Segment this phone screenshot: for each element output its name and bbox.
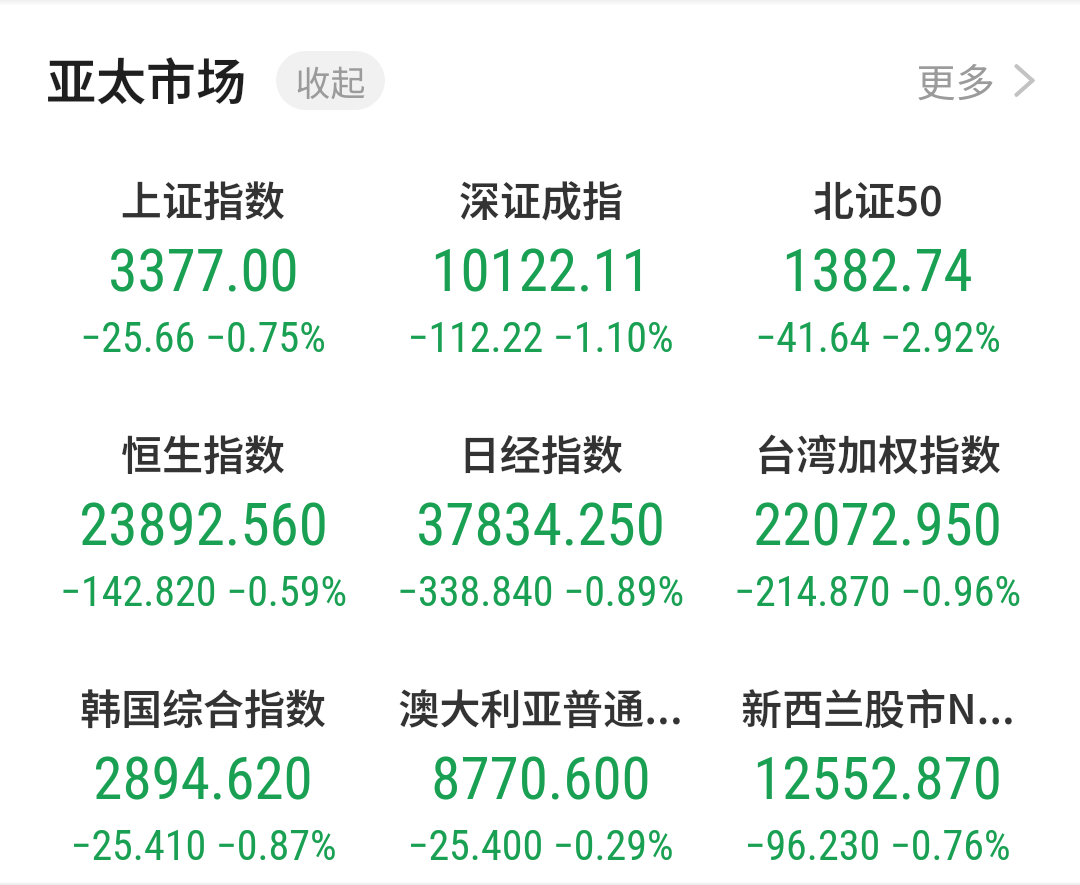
staticText: 收起 (295, 55, 366, 106)
staticText: −338.840 −0.89% (397, 567, 684, 616)
button[interactable]: 澳大利亚普通... (372, 676, 709, 870)
staticText: 澳大利亚普通... (398, 676, 683, 735)
staticText: −112.22 −1.10% (407, 313, 674, 362)
button[interactable]: 收起 (276, 51, 385, 110)
button[interactable]: 更多 (916, 40, 1034, 116)
button[interactable]: 深证成指 (372, 168, 709, 362)
staticText: −214.870 −0.96% (734, 567, 1021, 616)
staticText: 1382.74 (782, 236, 973, 305)
staticText: −25.66 −0.75% (80, 313, 326, 362)
staticText: 日经指数 (459, 422, 623, 481)
staticText: 3377.00 (108, 236, 299, 305)
button[interactable]: 上证指数 (34, 168, 372, 362)
staticText: 亚太市场 (46, 42, 246, 114)
staticText: 37834.250 (416, 490, 665, 559)
button[interactable]: 台湾加权指数 (709, 422, 1046, 616)
staticText: 韩国综合指数 (80, 676, 326, 735)
staticText: 台湾加权指数 (755, 422, 1001, 481)
staticText: 10122.11 (431, 236, 651, 305)
staticText: −25.410 −0.87% (70, 821, 337, 870)
button[interactable]: 新西兰股市N... (709, 676, 1046, 870)
staticText: 上证指数 (121, 168, 285, 227)
staticText: 12552.870 (753, 744, 1002, 813)
button[interactable]: 恒生指数 (34, 422, 372, 616)
staticText: 深证成指 (459, 168, 623, 227)
staticText: −142.820 −0.59% (60, 567, 347, 616)
staticText: 2894.620 (93, 744, 313, 813)
staticText: −96.230 −0.76% (744, 821, 1011, 870)
staticText: 新西兰股市N... (741, 676, 1015, 735)
staticText: 更多 (916, 52, 995, 108)
staticText: 北证50 (813, 168, 943, 227)
staticText: −41.64 −2.92% (755, 313, 1001, 362)
other: More Asia-Pacific markets (1015, 65, 1034, 96)
staticText: −25.400 −0.29% (407, 821, 674, 870)
staticText: 23892.560 (79, 490, 328, 559)
button[interactable]: 韩国综合指数 (34, 676, 372, 870)
button[interactable]: 北证50 (709, 168, 1046, 362)
button[interactable]: 日经指数 (372, 422, 709, 616)
staticText: 22072.950 (753, 490, 1002, 559)
staticText: 8770.600 (431, 744, 651, 813)
staticText: 恒生指数 (121, 422, 285, 481)
